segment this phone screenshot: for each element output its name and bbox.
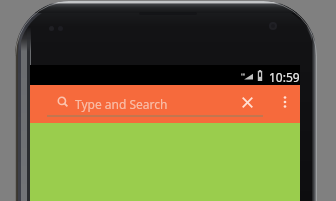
button[interactable]: More options	[273, 90, 297, 114]
staticText: 10:59	[269, 69, 300, 85]
button[interactable]: Clear search	[235, 90, 260, 114]
staticText: Type and Search	[75, 96, 168, 112]
